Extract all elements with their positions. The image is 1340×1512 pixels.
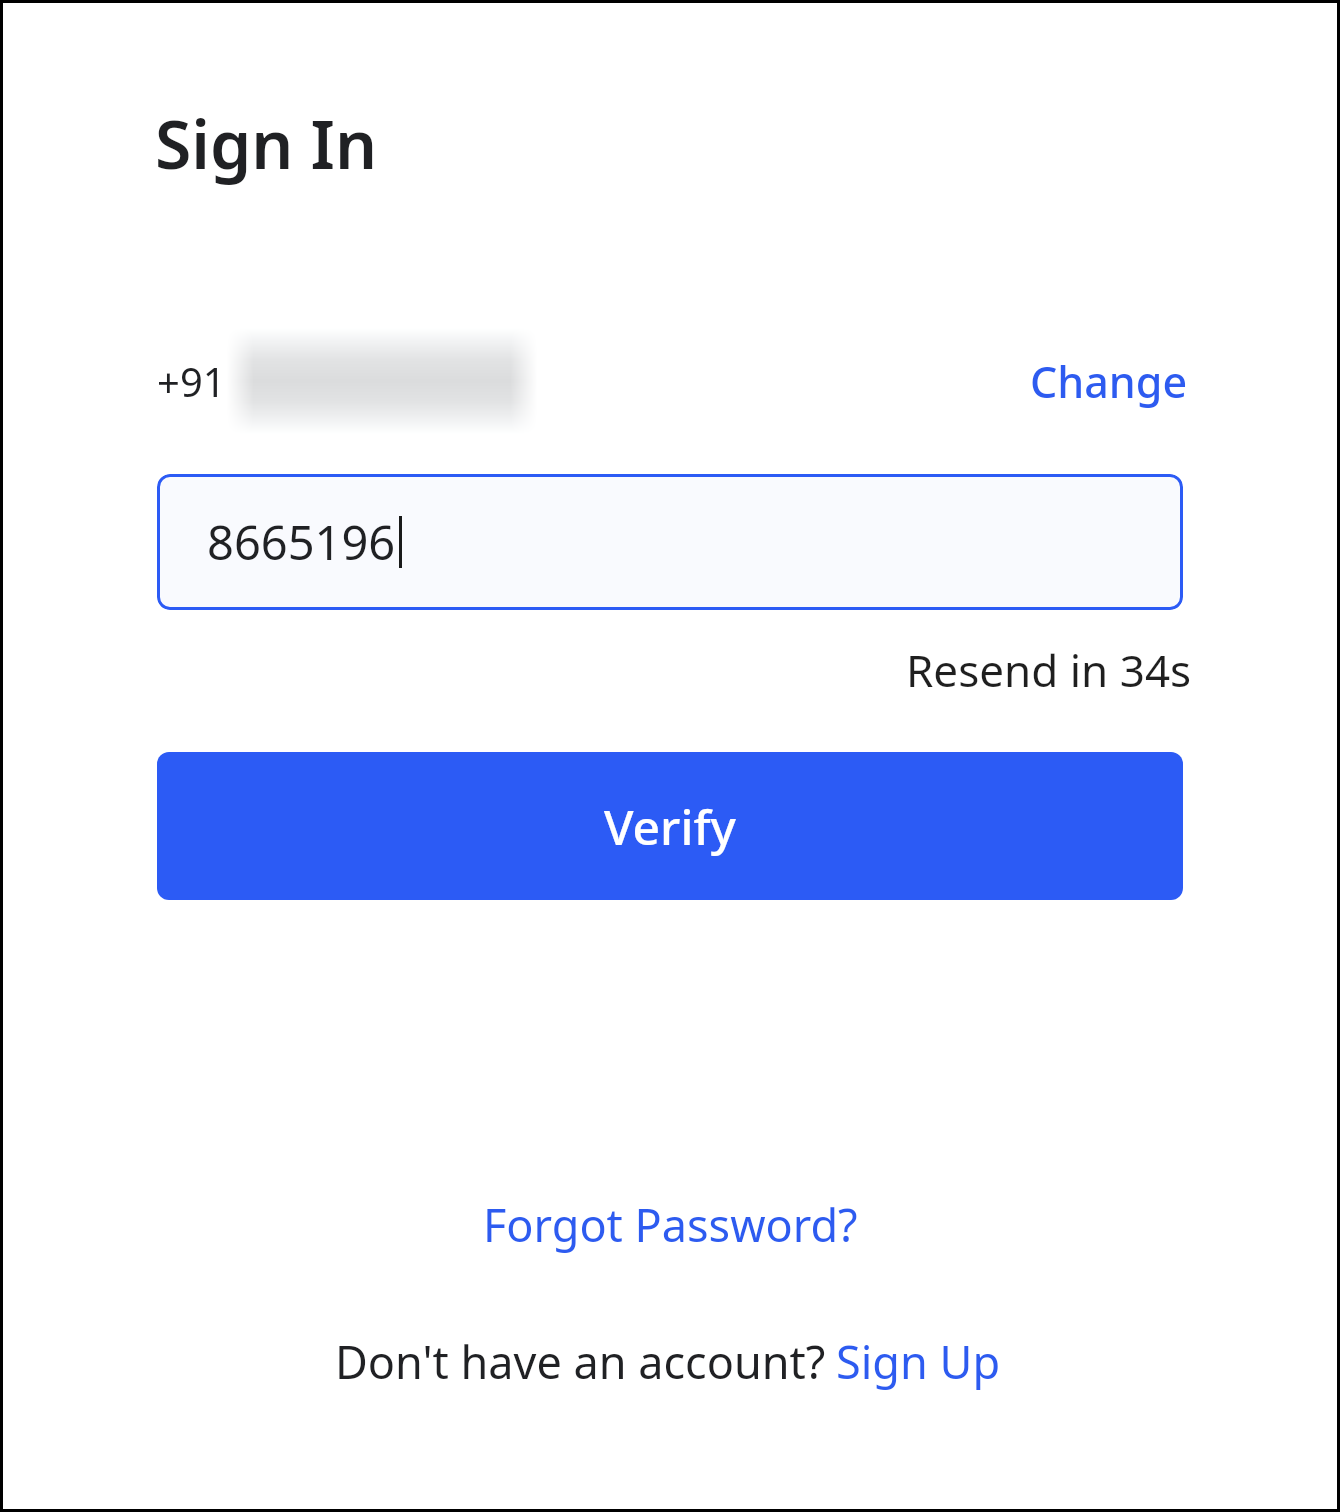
staticText: Verify bbox=[604, 794, 736, 859]
button[interactable]: 8665196 bbox=[157, 474, 1183, 610]
button[interactable]: Forgot Password? bbox=[477, 1188, 864, 1261]
staticText: Don't have an account? bbox=[335, 1331, 826, 1392]
staticText: Sign Up bbox=[836, 1331, 1001, 1392]
button[interactable]: Sign Up bbox=[826, 1327, 1005, 1396]
staticText: Sign In bbox=[155, 98, 378, 188]
staticText: Forgot Password? bbox=[483, 1194, 858, 1255]
staticText: 8665196 bbox=[207, 510, 396, 574]
staticText: Resend in 34s bbox=[906, 640, 1192, 700]
staticText: Change bbox=[1030, 352, 1188, 411]
staticText: +91 bbox=[157, 354, 226, 408]
button[interactable]: Change bbox=[1026, 348, 1192, 415]
button[interactable]: Verify bbox=[157, 752, 1183, 900]
